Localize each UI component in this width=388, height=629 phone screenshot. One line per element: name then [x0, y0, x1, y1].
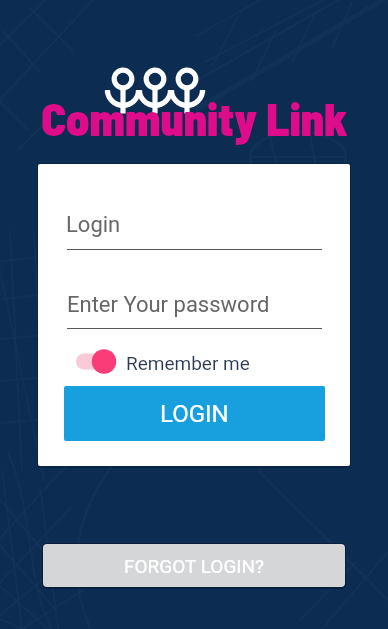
staticText: Login [66, 212, 121, 238]
staticText: Community Link [41, 90, 348, 145]
button[interactable]: LOGIN [64, 386, 325, 441]
staticText: Enter Your password [67, 292, 270, 318]
button[interactable]: Remember me [68, 347, 258, 376]
button[interactable]: FORGOT LOGIN? [43, 544, 345, 587]
staticText: LOGIN [160, 400, 229, 428]
staticText: Remember me [126, 352, 250, 374]
staticText: FORGOT LOGIN? [124, 555, 265, 577]
